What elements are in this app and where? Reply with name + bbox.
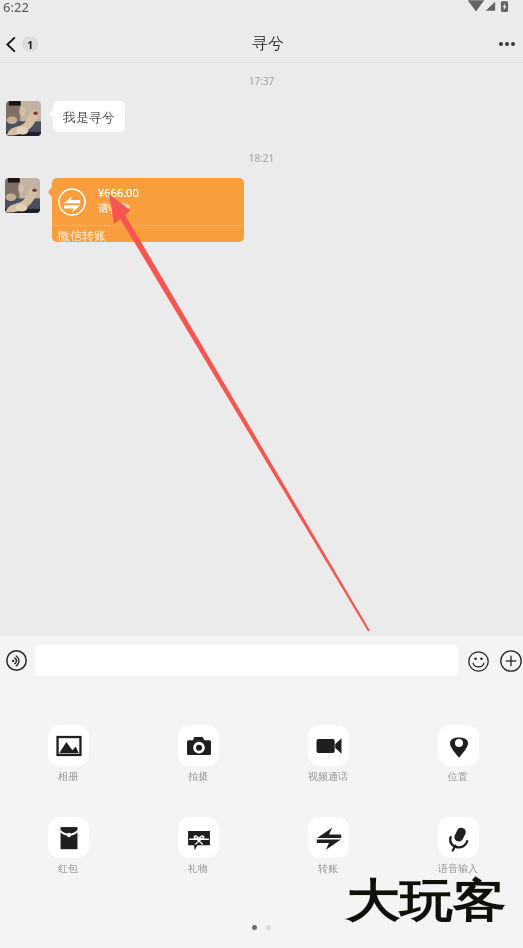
button[interactable]: 视频通话 [263,725,393,783]
other: Back [5,37,17,52]
button[interactable]: 红包 [3,817,133,875]
staticText: 转账 [318,862,338,875]
staticText: 礼物 [188,862,208,875]
staticText: 视频通话 [308,770,348,783]
button[interactable]: More options [488,32,523,56]
staticText: 大玩客 [346,873,505,931]
staticText: 微信转账 [58,228,106,242]
staticText: 位置 [448,770,468,783]
staticText: 语音输入 [438,862,478,875]
button[interactable]: ¥666.00 [52,178,244,242]
button[interactable]: Emoji [466,649,490,673]
button[interactable]: 我是寻兮 [53,101,125,132]
staticText: 1 [27,37,34,52]
staticText: 17:37 [0,74,523,88]
staticText: 相册 [58,770,78,783]
button[interactable]: 转账 [263,817,393,875]
button[interactable]: More functions [499,649,523,673]
button[interactable]: 位置 [393,725,523,783]
staticText: 寻兮 [252,34,284,54]
staticText: ¥666.00 [98,185,139,200]
button[interactable]: Voice message [4,648,29,673]
staticText: 请收款 [98,201,131,215]
button[interactable]: 相册 [3,725,133,783]
button[interactable]: 拍摄 [133,725,263,783]
button[interactable]: Back [0,36,44,52]
staticText: 我是寻兮 [63,109,115,125]
staticText: 6:22 [3,0,29,16]
staticText: 红包 [58,862,78,875]
button[interactable]: 礼物 [133,817,263,875]
staticText: 18:21 [0,151,523,165]
button[interactable]: 语音输入 [393,817,523,875]
staticText: 拍摄 [188,770,208,783]
